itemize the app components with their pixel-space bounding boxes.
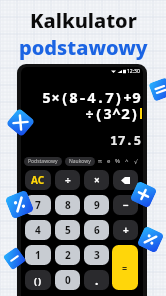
- button[interactable]: (): [25, 270, 51, 290]
- button[interactable]: 4: [25, 220, 51, 240]
- button[interactable]: %: [113, 155, 122, 167]
- button[interactable]: 1: [25, 245, 51, 265]
- staticText: .: [95, 272, 99, 288]
- button[interactable]: 2: [55, 245, 80, 265]
- staticText: 6: [94, 223, 100, 237]
- staticText: ÷: [65, 173, 71, 187]
- staticText: =: [122, 262, 128, 274]
- staticText: podstawowy: [19, 34, 148, 61]
- staticText: ^: [125, 157, 129, 165]
- staticText: e: [107, 157, 111, 165]
- button[interactable]: ^: [122, 155, 131, 167]
- button[interactable]: −: [113, 195, 138, 215]
- staticText: Naukowy: [69, 158, 91, 165]
- button[interactable]: Naukowy: [65, 157, 95, 166]
- button[interactable]: Backspace: [113, 170, 138, 190]
- button[interactable]: e: [104, 155, 113, 167]
- button[interactable]: Podstawowy: [24, 157, 62, 166]
- staticText: ×: [94, 173, 100, 187]
- button[interactable]: 5: [55, 220, 80, 240]
- button[interactable]: π: [95, 155, 104, 167]
- staticText: π: [98, 157, 102, 165]
- button[interactable]: 7: [25, 195, 51, 215]
- staticText: Podstawowy: [28, 158, 58, 165]
- staticText: −: [123, 198, 129, 212]
- staticText: 5×(8-4.7)+9: [42, 87, 142, 107]
- button[interactable]: AC: [25, 170, 51, 190]
- button[interactable]: 9: [84, 195, 109, 215]
- staticText: 12:30: [127, 68, 140, 75]
- staticText: 7: [35, 198, 41, 212]
- button[interactable]: 8: [55, 195, 80, 215]
- button[interactable]: 6: [84, 220, 109, 240]
- button[interactable]: .: [84, 270, 109, 290]
- staticText: +: [123, 223, 129, 237]
- staticText: (): [34, 274, 43, 286]
- button[interactable]: ÷: [55, 170, 80, 190]
- staticText: 2: [65, 248, 71, 262]
- staticText: 8: [65, 198, 71, 212]
- staticText: 9: [94, 198, 100, 212]
- button[interactable]: +: [113, 220, 138, 240]
- staticText: ÷(3^2): [85, 103, 140, 123]
- staticText: 1: [35, 248, 41, 262]
- staticText: 4: [35, 223, 41, 237]
- button[interactable]: ×: [84, 170, 109, 190]
- staticText: %: [115, 157, 120, 165]
- staticText: 17.5: [110, 131, 142, 149]
- staticText: AC: [31, 173, 45, 187]
- button[interactable]: =: [112, 245, 138, 290]
- staticText: Kalkulator: [30, 7, 137, 34]
- staticText: 3: [94, 248, 100, 262]
- other: Backspace: [121, 177, 130, 184]
- staticText: 5: [65, 223, 71, 237]
- button[interactable]: √: [131, 155, 140, 167]
- staticText: √: [134, 158, 138, 165]
- staticText: 0: [65, 273, 71, 287]
- button[interactable]: 0: [55, 270, 80, 290]
- button[interactable]: 3: [84, 245, 109, 265]
